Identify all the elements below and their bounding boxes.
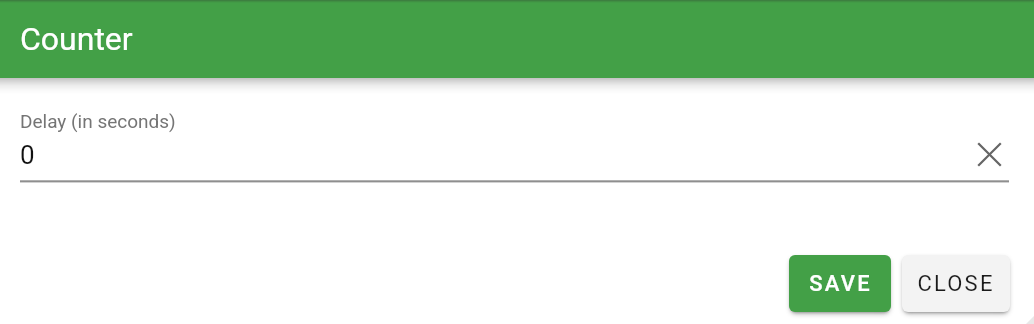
- button[interactable]: Counter: [0, 0, 1034, 78]
- button[interactable]: SAVE: [789, 255, 891, 312]
- button[interactable]: Clear: [966, 131, 1012, 177]
- button[interactable]: CLOSE: [902, 255, 1010, 312]
- staticText: CLOSE: [917, 271, 995, 297]
- staticText: Delay (in seconds): [20, 110, 176, 132]
- staticText: Counter: [20, 20, 133, 58]
- staticText: 0: [20, 140, 35, 170]
- staticText: SAVE: [809, 271, 872, 297]
